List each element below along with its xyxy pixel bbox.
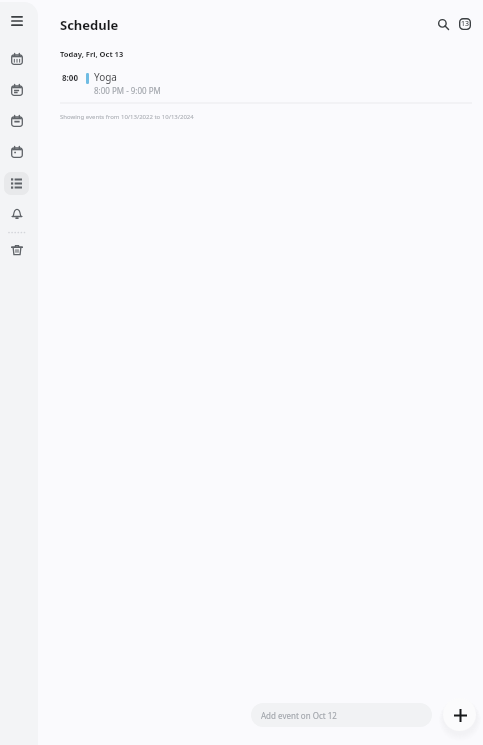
staticText: Yoga [94, 70, 117, 84]
staticText: 13 [461, 19, 470, 29]
button[interactable]: Month view [6, 48, 28, 70]
staticText: 8:00 PM - 9:00 PM [94, 85, 161, 96]
button[interactable]: Search [430, 11, 456, 37]
button[interactable]: List view [4, 172, 29, 195]
button[interactable]: Open navigation menu [5, 9, 29, 33]
staticText: Showing events from 10/13/2022 to 10/13/… [60, 113, 194, 121]
button[interactable]: Schedule view [6, 79, 28, 101]
button[interactable]: Jump to today [452, 11, 478, 37]
button[interactable]: Day view [6, 110, 28, 132]
button[interactable]: Notifications [6, 203, 28, 225]
button[interactable]: Trash [6, 239, 28, 261]
staticText: 8:00 [59, 72, 78, 83]
button[interactable]: Add event on Oct 12 [251, 703, 432, 727]
staticText: Add event on Oct 12 [261, 710, 337, 721]
button[interactable]: Week view [6, 141, 28, 163]
button[interactable]: 8:00 [38, 70, 483, 96]
button[interactable]: Create new event [443, 698, 476, 731]
staticText: Today, Fri, Oct 13 [60, 49, 124, 59]
staticText: Schedule [60, 16, 119, 34]
